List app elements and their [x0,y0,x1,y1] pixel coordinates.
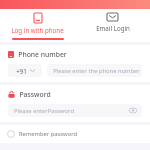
staticText: +91 [16,67,27,75]
button[interactable]: Please enter the phone number [47,64,142,77]
staticText: Password [19,90,51,99]
other: Email login [107,13,118,21]
staticText: Remember password [19,130,77,138]
button[interactable]: Please enterPassword [8,104,142,117]
staticText: Please enter the phone number [53,67,140,75]
button[interactable]: Phone login [0,9,75,42]
other: Phone login [34,13,42,23]
button[interactable]: +91 [8,64,42,77]
button[interactable]: Remember password [7,125,77,143]
staticText: Phone number [18,50,67,59]
staticText: Please enterPassword [14,107,74,115]
staticText: Log in with phone [11,26,64,34]
button[interactable]: Show password [128,106,137,115]
staticText: Email Login [96,24,130,32]
button[interactable]: Email login [75,9,150,42]
